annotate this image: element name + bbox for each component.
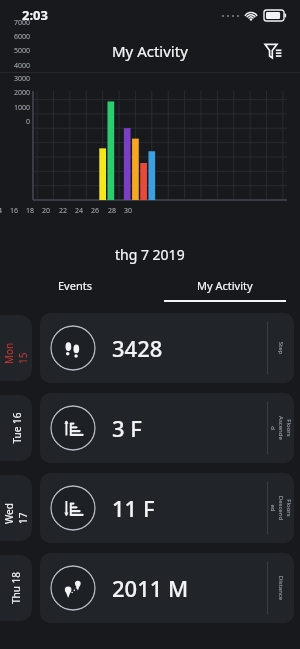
- staticText: Distance: [277, 575, 285, 601]
- staticText: 4000: [0, 61, 30, 71]
- staticText: thg 7 2019: [115, 245, 185, 264]
- staticText: 26: [91, 206, 100, 216]
- staticText: 14: [0, 206, 3, 216]
- staticText: 0: [0, 117, 30, 127]
- staticText: My Activity: [112, 41, 188, 61]
- staticText: Events: [58, 278, 92, 293]
- staticText: 20: [42, 206, 51, 216]
- staticText: Floors Ascended: [269, 415, 293, 441]
- staticText: Tue 16: [9, 412, 23, 443]
- staticText: 7000: [0, 18, 30, 28]
- staticText: 3000: [0, 74, 30, 84]
- staticText: 2000: [0, 88, 30, 98]
- button[interactable]: Events: [0, 270, 150, 300]
- staticText: 1000: [0, 103, 30, 113]
- staticText: Thu 18: [9, 572, 23, 604]
- button[interactable]: Mon 15: [0, 308, 300, 388]
- button[interactable]: My Activity: [150, 270, 300, 300]
- staticText: 2011 M: [112, 573, 189, 603]
- button[interactable]: Thu 18: [0, 548, 300, 628]
- staticText: Step: [277, 335, 285, 361]
- staticText: 5000: [0, 46, 30, 56]
- staticText: 24: [75, 206, 84, 216]
- button[interactable]: Wed 17: [0, 468, 300, 548]
- staticText: Floors Descended: [269, 495, 293, 521]
- staticText: 6000: [0, 32, 30, 42]
- staticText: 3 F: [112, 413, 142, 443]
- button[interactable]: Filter: [256, 34, 290, 68]
- staticText: 30: [124, 206, 133, 216]
- staticText: 11 F: [112, 493, 155, 523]
- staticText: 3428: [112, 333, 163, 363]
- staticText: My Activity: [197, 278, 253, 293]
- staticText: Mon 15: [2, 332, 30, 364]
- staticText: 2:03: [22, 6, 48, 24]
- staticText: Wed 17: [2, 492, 30, 524]
- staticText: 16: [10, 206, 19, 216]
- staticText: 28: [108, 206, 117, 216]
- staticText: 22: [59, 206, 68, 216]
- staticText: 18: [26, 206, 35, 216]
- button[interactable]: Tue 16: [0, 388, 300, 468]
